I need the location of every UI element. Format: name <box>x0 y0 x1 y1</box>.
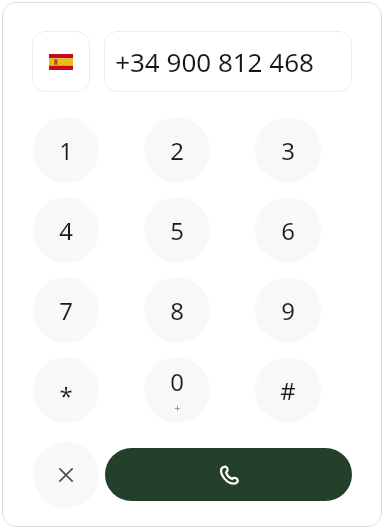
staticText: 7 <box>59 294 73 327</box>
staticText: 4 <box>59 214 73 247</box>
button[interactable]: 4 <box>33 197 99 263</box>
button[interactable]: 5 <box>144 197 210 263</box>
staticText: 9 <box>281 294 295 327</box>
staticText: 6 <box>281 214 295 247</box>
button[interactable]: +34 900 812 468 <box>104 31 352 92</box>
button[interactable]: 3 <box>255 117 321 183</box>
button[interactable]: Call <box>105 448 352 501</box>
staticText: +34 900 812 468 <box>115 44 314 79</box>
button[interactable]: 0 <box>144 357 210 423</box>
button[interactable]: 6 <box>255 197 321 263</box>
staticText: 8 <box>170 294 184 327</box>
button[interactable]: 1 <box>33 117 99 183</box>
staticText: # <box>280 374 296 407</box>
button[interactable]: 8 <box>144 277 210 343</box>
button[interactable]: * <box>33 357 99 423</box>
staticText: 2 <box>170 134 184 167</box>
staticText: + <box>174 400 181 415</box>
staticText: 5 <box>170 214 184 247</box>
staticText: * <box>59 379 73 412</box>
button[interactable]: Country: Spain <box>32 31 90 92</box>
staticText: 1 <box>59 134 73 167</box>
button[interactable]: 7 <box>33 277 99 343</box>
staticText: 0 <box>170 365 184 398</box>
button[interactable]: 2 <box>144 117 210 183</box>
button[interactable]: 9 <box>255 277 321 343</box>
staticText: 3 <box>281 134 295 167</box>
button[interactable]: Clear <box>33 442 99 508</box>
button[interactable]: # <box>255 357 321 423</box>
